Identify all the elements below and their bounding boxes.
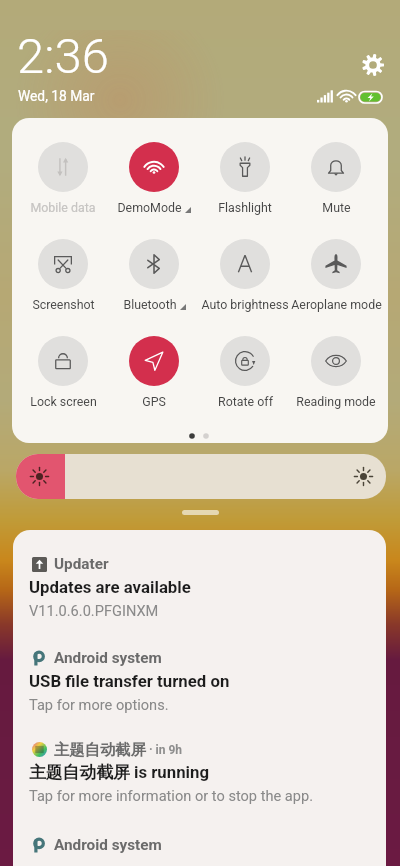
staticText: Tap for more information or to stop the … bbox=[29, 787, 314, 804]
staticText: Wed, 18 Mar bbox=[18, 88, 95, 104]
staticText: Mute bbox=[322, 200, 351, 215]
staticText: GPS bbox=[142, 394, 166, 409]
button[interactable]: Bluetooth bbox=[104, 239, 204, 312]
button[interactable]: Reading mode bbox=[286, 336, 386, 409]
button[interactable]: Mobile data bbox=[13, 142, 113, 215]
staticText: Android system bbox=[54, 649, 162, 667]
button[interactable]: Flashlight bbox=[195, 142, 295, 215]
staticText: Flashlight bbox=[218, 200, 272, 215]
staticText: DemoMode bbox=[117, 200, 182, 215]
staticText: USB file transfer turned on bbox=[29, 671, 230, 691]
staticText: · in 9h bbox=[146, 743, 183, 757]
staticText: Reading mode bbox=[296, 394, 376, 409]
button[interactable]: Mute bbox=[286, 142, 386, 215]
staticText: 2:36 bbox=[17, 28, 109, 85]
button[interactable]: Settings bbox=[362, 54, 384, 76]
staticText: Android system bbox=[54, 836, 162, 854]
button[interactable]: Updater bbox=[13, 557, 386, 645]
button[interactable]: Brightness bbox=[16, 454, 386, 499]
staticText: V11.0.6.0.PFGINXM bbox=[29, 602, 159, 619]
button[interactable]: Android system bbox=[13, 838, 386, 866]
staticText: Auto brightness bbox=[201, 297, 289, 312]
button[interactable]: Android system bbox=[13, 651, 386, 739]
staticText: Bluetooth bbox=[123, 297, 177, 312]
staticText: Lock screen bbox=[30, 394, 97, 409]
button[interactable]: DemoMode bbox=[104, 142, 204, 215]
staticText: Rotate off bbox=[218, 394, 273, 409]
staticText: Aeroplane mode bbox=[291, 297, 382, 312]
staticText: Mobile data bbox=[30, 200, 96, 215]
button[interactable]: GPS bbox=[104, 336, 204, 409]
button[interactable]: Aeroplane mode bbox=[286, 239, 386, 312]
button[interactable]: Lock screen bbox=[13, 336, 113, 409]
staticText: Updates are available bbox=[29, 577, 191, 597]
button[interactable]: Rotate off bbox=[195, 336, 295, 409]
staticText: 主题自动截屏 bbox=[54, 740, 146, 759]
staticText: Updater bbox=[54, 555, 109, 573]
staticText: 主题自动截屏 is running bbox=[29, 762, 210, 783]
button[interactable]: Expand bbox=[182, 510, 219, 515]
button[interactable]: Screenshot bbox=[13, 239, 113, 312]
staticText: Tap for more options. bbox=[29, 696, 169, 713]
staticText: Screenshot bbox=[32, 297, 95, 312]
button[interactable]: 主题自动截屏 bbox=[13, 742, 386, 830]
button[interactable]: Auto brightness bbox=[195, 239, 295, 312]
